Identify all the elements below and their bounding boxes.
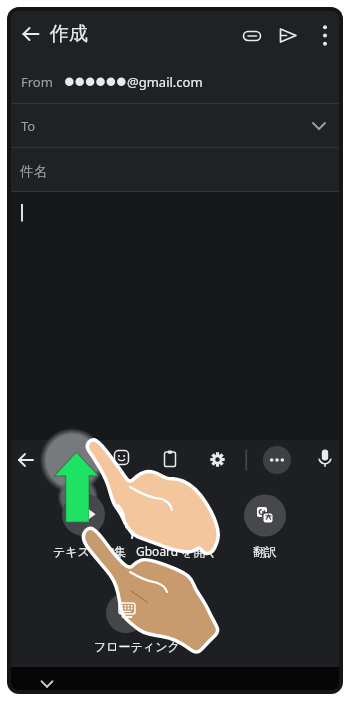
button[interactable] bbox=[108, 444, 135, 472]
button[interactable] bbox=[244, 495, 286, 537]
button[interactable] bbox=[154, 494, 194, 534]
button[interactable] bbox=[11, 192, 339, 440]
button[interactable] bbox=[62, 493, 105, 536]
staticText: To bbox=[21, 117, 36, 135]
button[interactable] bbox=[156, 445, 184, 473]
staticText: From bbox=[21, 73, 53, 91]
staticText: フローティング bbox=[94, 639, 180, 654]
staticText: 件名 bbox=[20, 163, 47, 180]
button[interactable] bbox=[263, 446, 291, 474]
button[interactable] bbox=[15, 20, 43, 48]
button[interactable] bbox=[238, 22, 266, 50]
button[interactable] bbox=[11, 667, 339, 690]
staticText: Gboard を開く bbox=[136, 543, 218, 559]
staticText: 作成 bbox=[50, 22, 88, 46]
staticText: 翻訳 bbox=[253, 544, 277, 559]
button[interactable] bbox=[13, 446, 39, 474]
button[interactable] bbox=[107, 591, 147, 631]
staticText: @gmail.com bbox=[127, 73, 203, 91]
button[interactable] bbox=[311, 444, 339, 472]
button[interactable] bbox=[11, 60, 339, 103]
button[interactable] bbox=[11, 104, 339, 147]
button[interactable] bbox=[203, 445, 231, 473]
staticText: テキスト編集 bbox=[53, 544, 127, 559]
button[interactable] bbox=[11, 148, 339, 191]
button[interactable] bbox=[274, 21, 302, 49]
button[interactable] bbox=[311, 21, 339, 49]
